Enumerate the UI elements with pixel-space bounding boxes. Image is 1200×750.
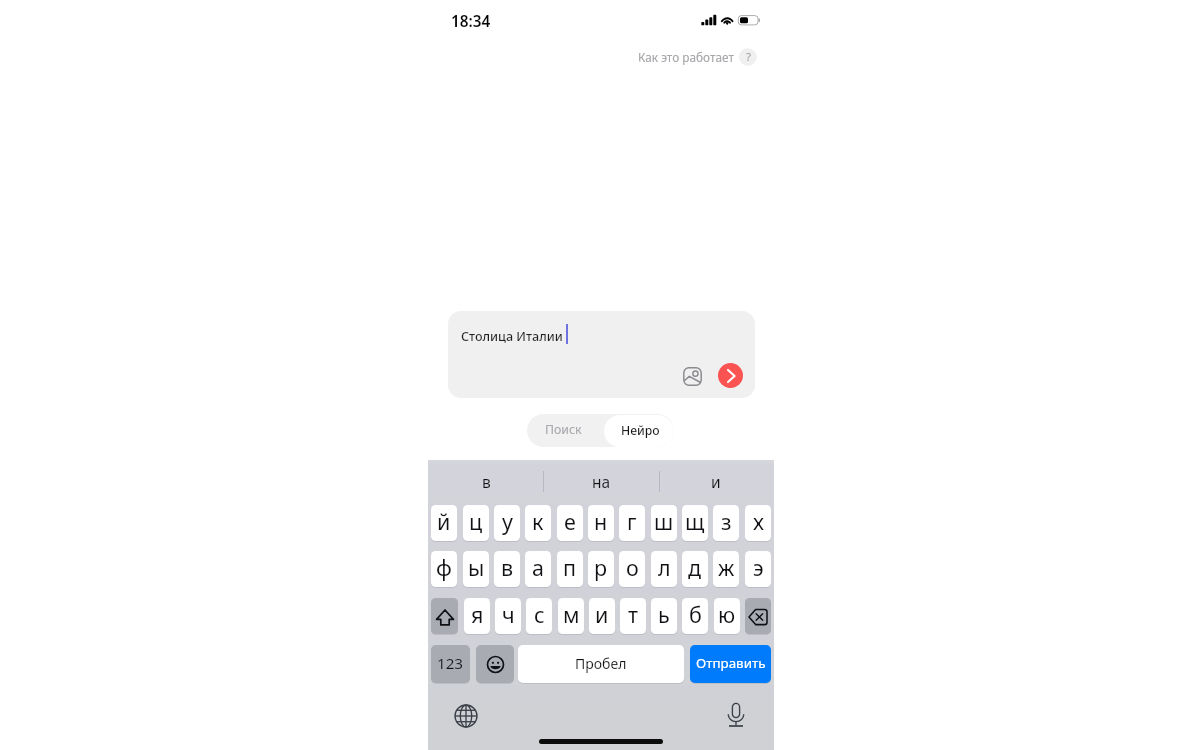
button[interactable]: д	[682, 551, 708, 587]
staticText: й	[437, 507, 451, 536]
staticText: и	[595, 600, 609, 629]
button[interactable]: с	[526, 598, 552, 634]
button[interactable]: Switch keyboard language	[452, 702, 480, 730]
button[interactable]: Shift	[431, 598, 458, 634]
button[interactable]: Backspace	[745, 598, 771, 634]
staticText: ю	[718, 600, 736, 629]
staticText: х	[753, 507, 764, 536]
button[interactable]: т	[620, 598, 646, 634]
staticText: Столица Италии	[461, 328, 563, 345]
staticText: Пробел	[575, 654, 627, 673]
button[interactable]: ж	[713, 551, 739, 587]
button[interactable]: Пробел	[518, 645, 684, 683]
button[interactable]: Send	[718, 363, 743, 388]
staticText: с	[534, 600, 545, 629]
button[interactable]: р	[588, 551, 614, 587]
staticText: Поиск	[545, 421, 582, 438]
button[interactable]: я	[464, 598, 490, 634]
staticText: н	[594, 507, 608, 536]
button[interactable]: в	[494, 551, 520, 587]
staticText: л	[658, 553, 671, 582]
staticText: Как это работает	[638, 49, 734, 65]
staticText: з	[721, 507, 732, 536]
staticText: Нейро	[621, 422, 660, 439]
button[interactable]: л	[651, 551, 677, 587]
button[interactable]: х	[745, 505, 771, 541]
staticText: на	[592, 471, 611, 492]
staticText: и	[711, 471, 721, 492]
staticText: у	[502, 507, 513, 536]
button[interactable]: ч	[495, 598, 521, 634]
staticText: г	[627, 507, 637, 536]
button[interactable]: м	[558, 598, 584, 634]
button[interactable]: Отправить	[690, 645, 771, 683]
staticText: Отправить	[696, 654, 766, 672]
staticText: р	[594, 553, 608, 582]
staticText: ?	[746, 49, 751, 65]
button[interactable]: на	[557, 460, 645, 503]
button[interactable]: Emoji keyboard	[476, 645, 514, 683]
button[interactable]: ю	[714, 598, 740, 634]
staticText: м	[563, 600, 580, 629]
staticText: 18:34	[451, 11, 491, 32]
staticText: а	[532, 553, 544, 582]
button[interactable]: Поиск	[527, 414, 604, 447]
button[interactable]: в	[442, 460, 530, 503]
staticText: д	[688, 553, 702, 582]
staticText: ы	[468, 553, 485, 582]
button[interactable]: к	[525, 505, 551, 541]
staticText: ш	[654, 507, 674, 536]
button[interactable]: Как это работает	[638, 48, 757, 66]
button[interactable]: ь	[651, 598, 677, 634]
staticText: ц	[469, 507, 483, 536]
staticText: ф	[436, 553, 452, 582]
staticText: в	[482, 471, 491, 492]
button[interactable]: з	[713, 505, 739, 541]
button[interactable]: Numbers	[431, 645, 470, 683]
staticText: т	[628, 600, 638, 629]
button[interactable]: у	[494, 505, 520, 541]
staticText: ч	[502, 600, 515, 629]
button[interactable]: н	[588, 505, 614, 541]
button[interactable]: п	[557, 551, 583, 587]
button[interactable]: ц	[463, 505, 489, 541]
staticText: п	[563, 553, 577, 582]
button[interactable]: б	[682, 598, 708, 634]
staticText: б	[689, 600, 702, 629]
button[interactable]: ш	[651, 505, 677, 541]
staticText: щ	[685, 507, 705, 536]
button[interactable]: э	[745, 551, 771, 587]
staticText: я	[471, 600, 484, 629]
button[interactable]: и	[672, 460, 760, 503]
staticText: э	[753, 553, 764, 582]
button[interactable]: ы	[463, 551, 489, 587]
staticText: к	[532, 507, 544, 536]
button[interactable]: и	[589, 598, 615, 634]
staticText: о	[626, 553, 639, 582]
staticText: ж	[718, 553, 735, 582]
button[interactable]: Столица Италии	[448, 311, 755, 398]
staticText: е	[564, 507, 576, 536]
button[interactable]: Attach image	[678, 362, 707, 391]
staticText: в	[501, 553, 514, 582]
button[interactable]: ф	[431, 551, 457, 587]
button[interactable]: Нейро	[604, 415, 674, 447]
button[interactable]: щ	[682, 505, 708, 541]
staticText: 123	[437, 653, 464, 674]
button[interactable]: е	[557, 505, 583, 541]
button[interactable]: г	[619, 505, 645, 541]
staticText: ь	[658, 600, 670, 629]
button[interactable]: й	[431, 505, 457, 541]
button[interactable]: о	[619, 551, 645, 587]
button[interactable]: Voice input	[722, 701, 750, 729]
button[interactable]: а	[525, 551, 551, 587]
